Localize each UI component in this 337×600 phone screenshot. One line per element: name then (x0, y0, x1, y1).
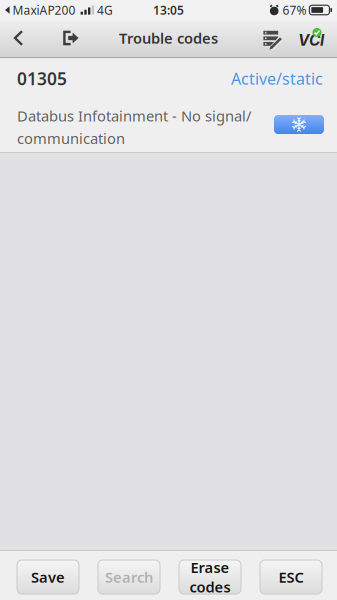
button[interactable]: Erase (179, 560, 241, 594)
staticText: 01305 (17, 67, 67, 90)
staticText: 13:05 (153, 2, 184, 18)
staticText: communication (17, 128, 125, 148)
button[interactable]: Back (2, 20, 35, 56)
staticText: 4G (97, 2, 113, 18)
staticText: ESC (278, 567, 303, 587)
button[interactable]: VCI connected (293, 20, 327, 56)
button[interactable]: Exit (53, 20, 89, 56)
staticText: Save (31, 567, 65, 587)
staticText: Active/static (231, 68, 323, 89)
staticText: VCI (298, 31, 324, 50)
staticText: Trouble codes (119, 28, 218, 48)
staticText: 67% (279, 2, 309, 18)
staticText: Erase (190, 557, 229, 577)
button[interactable]: Edit list (256, 22, 292, 58)
staticText: Search (105, 567, 153, 587)
button[interactable]: Freeze frame (274, 115, 324, 134)
button[interactable]: Search (98, 560, 160, 594)
staticText: Databus Infotainment - No signal/ (17, 106, 251, 125)
button[interactable]: Save (17, 560, 79, 594)
button[interactable]: ESC (260, 560, 322, 594)
staticText: MaxiAP200 (10, 2, 76, 18)
staticText: codes (189, 577, 230, 596)
